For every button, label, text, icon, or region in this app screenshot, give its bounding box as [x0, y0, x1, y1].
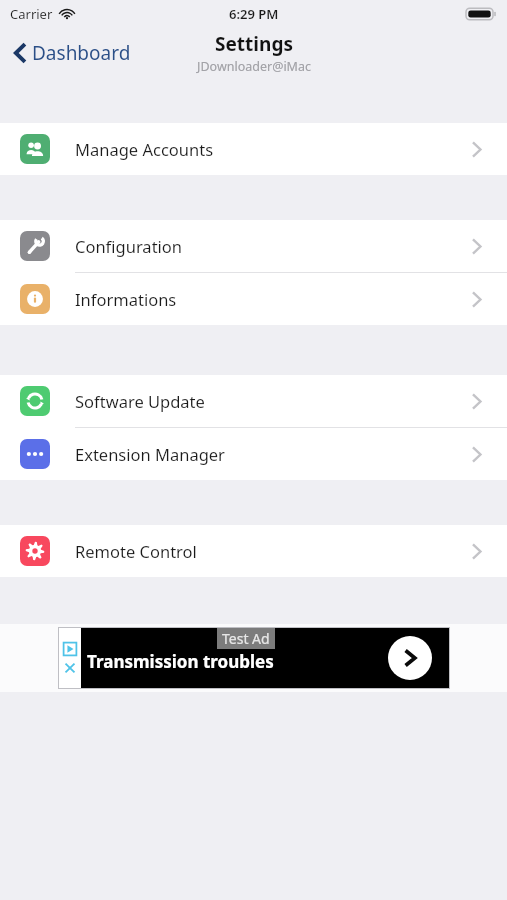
- button[interactable]: Remote Control: [0, 525, 507, 577]
- staticText: Extension Manager: [75, 443, 225, 465]
- button[interactable]: Open ad: [388, 636, 432, 680]
- staticText: Configuration: [75, 235, 183, 257]
- button[interactable]: Configuration: [0, 220, 507, 272]
- staticText: Manage Accounts: [75, 138, 214, 160]
- staticText: Settings: [215, 31, 293, 57]
- button[interactable]: Informations: [0, 273, 507, 325]
- button[interactable]: Software Update: [0, 375, 507, 427]
- staticText: Informations: [75, 288, 177, 310]
- staticText: Dashboard: [32, 40, 131, 66]
- staticText: 6:29 PM: [229, 5, 279, 23]
- staticText: Remote Control: [75, 540, 197, 562]
- staticText: Carrier: [10, 5, 53, 23]
- staticText: Test Ad: [222, 629, 270, 648]
- button[interactable]: Advertisement: Transmission troubles: [59, 628, 449, 688]
- staticText: Transmission troubles: [87, 650, 274, 673]
- button[interactable]: Manage Accounts: [0, 123, 507, 175]
- staticText: Software Update: [75, 390, 205, 412]
- staticText: JDownloader@iMac: [197, 58, 311, 75]
- button[interactable]: Extension Manager: [0, 428, 507, 480]
- button[interactable]: Dashboard: [12, 35, 133, 71]
